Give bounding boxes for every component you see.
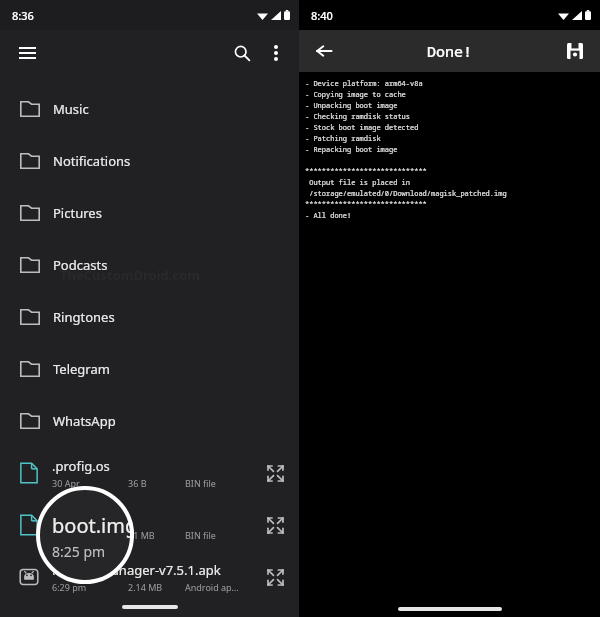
- button[interactable]: Expand: [260, 562, 290, 592]
- button[interactable]: More options: [259, 36, 293, 70]
- staticText: 8:25 pm: [52, 542, 106, 561]
- staticText: - Repacking boot image: [305, 145, 398, 155]
- staticText: - Device platform: arm64-v8a: [305, 79, 423, 89]
- button[interactable]: Back: [307, 34, 341, 68]
- button[interactable]: Expand: [260, 458, 290, 488]
- staticText: Magisk-Manager-v7.5.1.apk: [52, 561, 221, 579]
- staticText: - Stock boot image detected: [305, 123, 419, 133]
- staticText: 2.14 MB: [128, 581, 163, 593]
- staticText: 36 B: [128, 477, 147, 489]
- staticText: /storage/emulated/0/Download/magisk_patc…: [305, 189, 507, 199]
- button[interactable]: Menu: [10, 36, 44, 70]
- button[interactable]: Ringtones: [0, 291, 299, 343]
- staticText: - Checking ramdisk status: [305, 112, 410, 122]
- staticText: boot.img: [52, 512, 134, 539]
- button[interactable]: Expand: [260, 510, 290, 540]
- staticText: *****************************: [305, 200, 427, 210]
- staticText: 8:25 pm: [52, 529, 87, 541]
- button[interactable]: .profig.os: [0, 447, 299, 499]
- staticText: Output file is placed in: [305, 178, 410, 188]
- button[interactable]: Notifications: [0, 135, 299, 187]
- staticText: Music: [53, 100, 89, 118]
- staticText: Notifications: [53, 152, 131, 170]
- staticText: BIN file: [185, 477, 216, 489]
- staticText: - Patching ramdisk: [305, 134, 381, 144]
- button[interactable]: Pictures: [0, 187, 299, 239]
- button[interactable]: Podcasts: [0, 239, 299, 291]
- staticText: Podcasts: [53, 256, 108, 274]
- staticText: Ringtones: [53, 308, 115, 326]
- staticText: WhatsApp: [53, 412, 116, 430]
- staticText: 8:36: [12, 8, 34, 23]
- button[interactable]: WhatsApp: [0, 395, 299, 447]
- staticText: boot.img: [52, 509, 108, 527]
- staticText: .profig.os: [52, 457, 110, 475]
- button[interactable]: Magisk-Manager-v7.5.1.apk: [0, 551, 299, 603]
- button[interactable]: boot.img: [0, 499, 299, 551]
- staticText: - Unpacking boot image: [305, 101, 398, 111]
- button[interactable]: Search: [225, 36, 259, 70]
- staticText: - All done!: [305, 211, 352, 221]
- staticText: 6:29 pm: [52, 581, 87, 593]
- staticText: Pictures: [53, 204, 102, 222]
- button[interactable]: Save: [559, 35, 591, 67]
- staticText: 30 Apr: [52, 477, 80, 489]
- staticText: Done!: [427, 41, 473, 61]
- staticText: 11 MB: [128, 529, 155, 541]
- staticText: *****************************: [305, 167, 427, 177]
- staticText: - Copying image to cache: [305, 90, 406, 100]
- button[interactable]: Music: [0, 83, 299, 135]
- staticText: Telegram: [53, 360, 110, 378]
- staticText: TheCustomDroid.com: [60, 266, 200, 284]
- staticText: 8:40: [311, 8, 333, 23]
- button[interactable]: Telegram: [0, 343, 299, 395]
- staticText: Android ap…: [185, 581, 239, 593]
- staticText: BIN file: [185, 529, 216, 541]
